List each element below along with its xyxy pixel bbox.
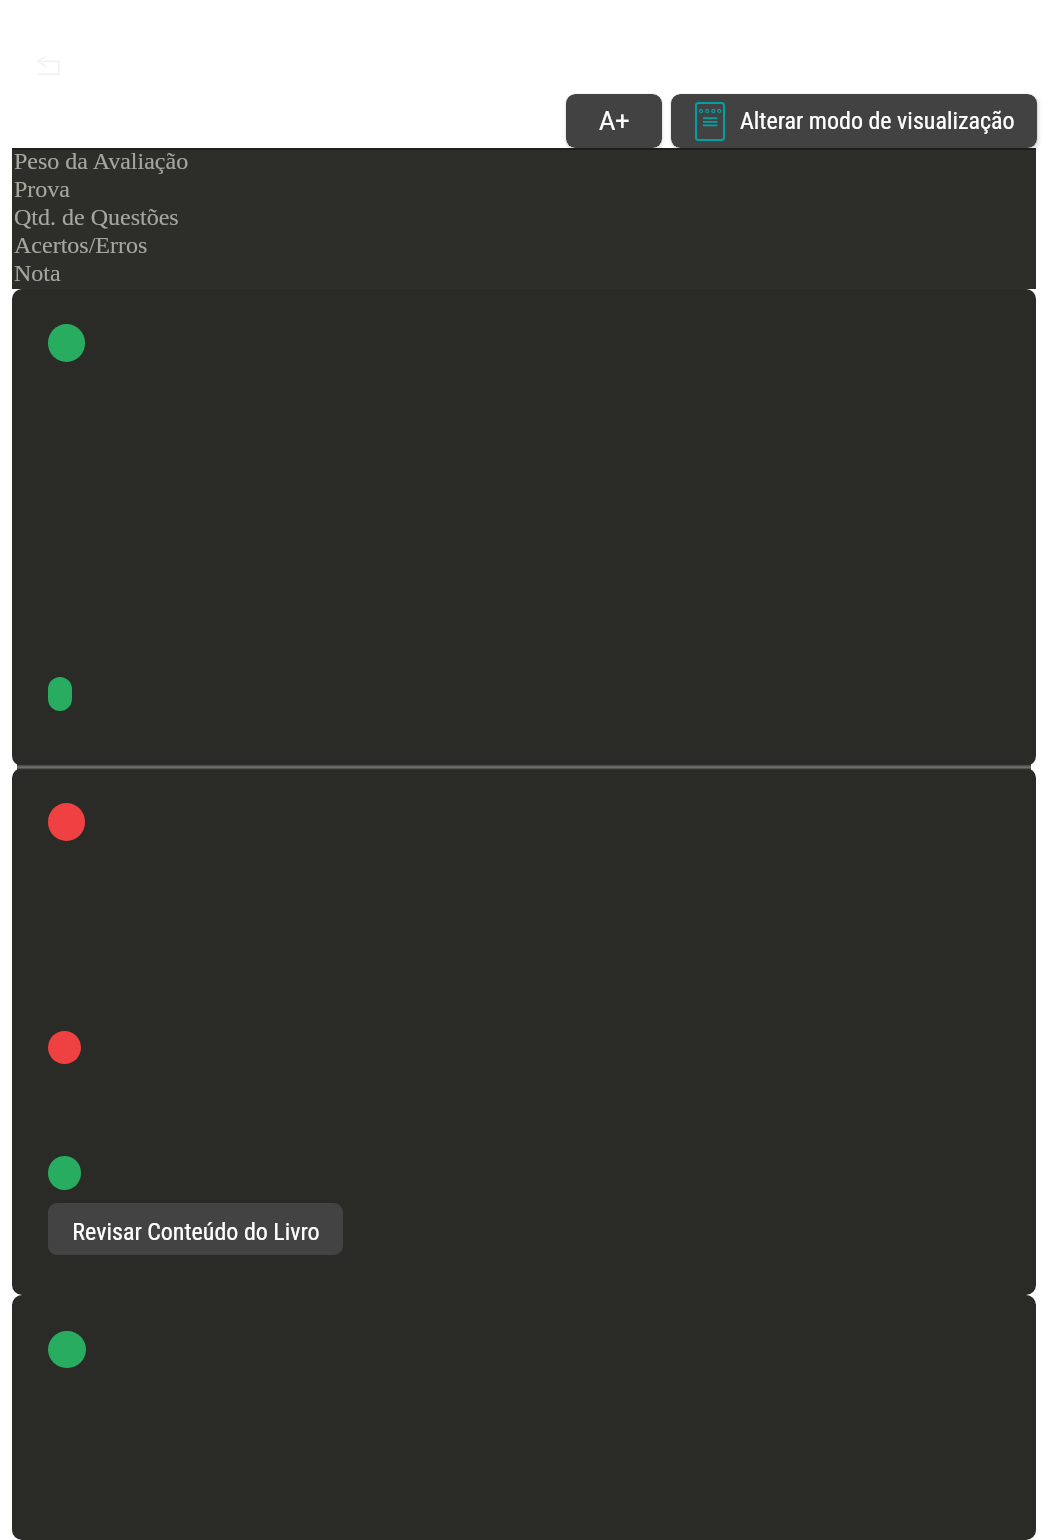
button[interactable] (12, 1295, 1036, 1540)
staticText: Peso da Avaliação (14, 148, 189, 175)
staticText: A+ (599, 107, 630, 136)
button[interactable] (12, 289, 1036, 766)
button[interactable]: A+ (566, 94, 662, 148)
staticText: Prova (14, 176, 70, 203)
staticText: Revisar Conteúdo do Livro (72, 1218, 320, 1246)
staticText: Alterar modo de visualização (740, 107, 1015, 135)
staticText: Acertos/Erros (14, 232, 148, 259)
button[interactable]: Revisar Conteúdo do Livro (12, 768, 1036, 1295)
staticText: Qtd. de Questões (14, 204, 179, 231)
button[interactable]: Voltar (33, 56, 63, 80)
staticText: Nota (14, 260, 61, 287)
button[interactable]: Revisar Conteúdo do Livro (48, 1203, 343, 1255)
button[interactable]: Alterar modo de visualização (671, 94, 1037, 148)
